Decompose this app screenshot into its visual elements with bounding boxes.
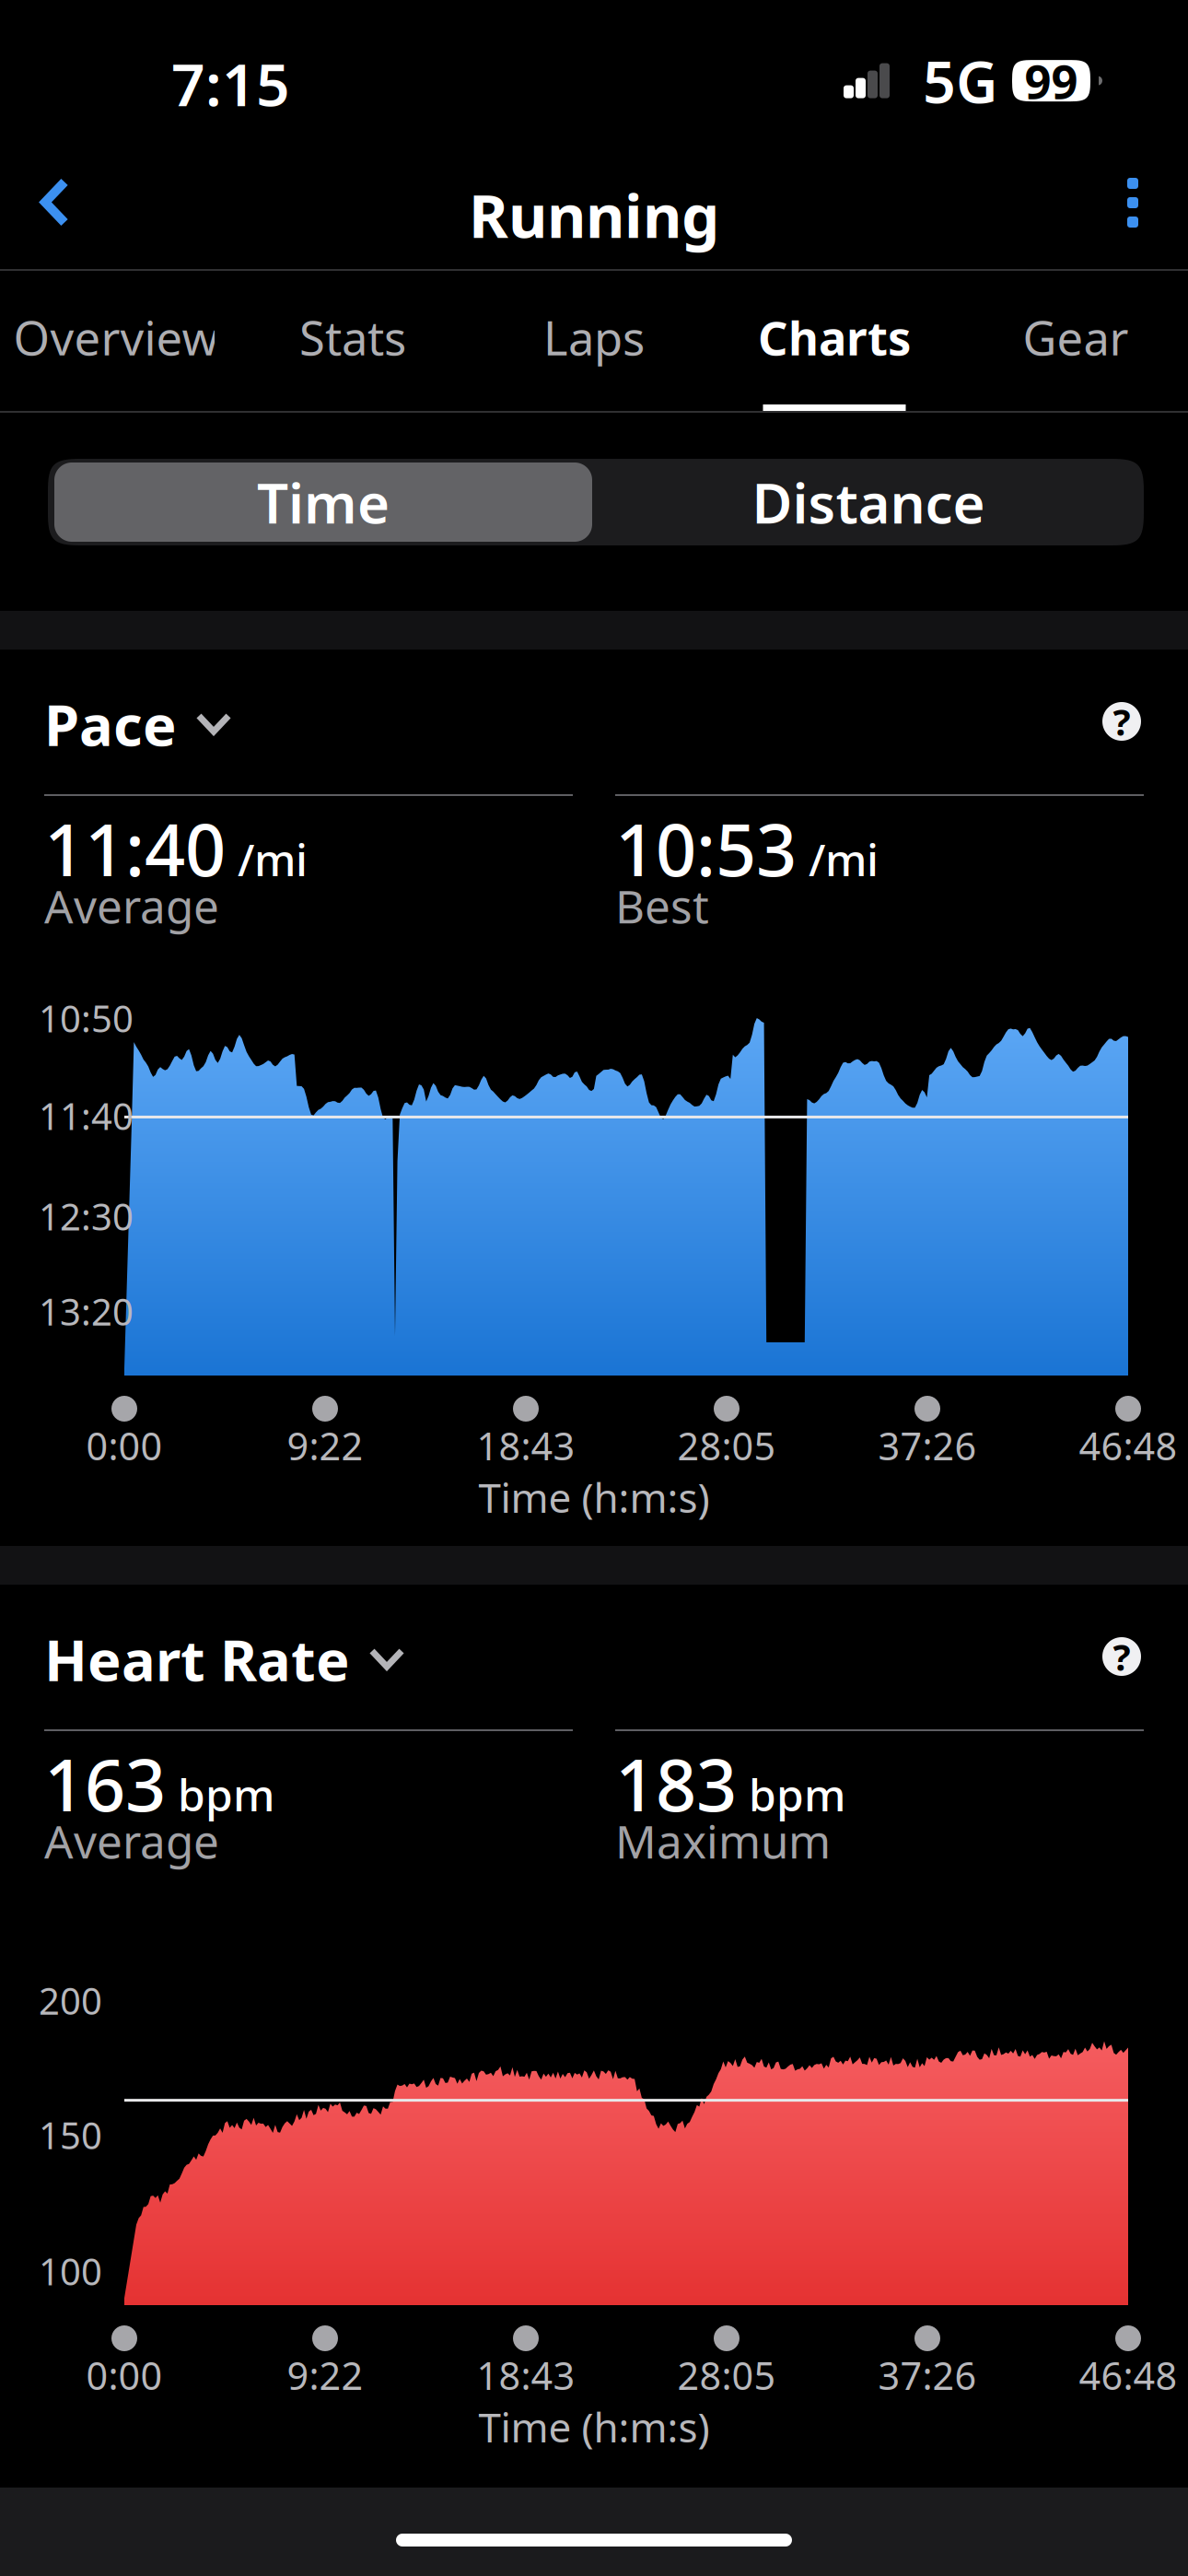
button[interactable]: More options [1077, 136, 1188, 269]
staticText: bpm [178, 1765, 274, 1823]
staticText: 7:15 [171, 44, 290, 123]
staticText: Average [44, 875, 219, 936]
staticText: Pace [44, 687, 177, 762]
staticText: Distance [752, 465, 985, 539]
staticText: 10:53 [615, 801, 797, 896]
staticText: 100 [39, 2247, 102, 2295]
button[interactable]: Laps [456, 271, 732, 411]
staticText: Time [257, 465, 390, 539]
button[interactable]: Stats [215, 271, 491, 411]
staticText: Time (h:m:s) [478, 1470, 710, 1524]
staticText: 11:40 [39, 1091, 134, 1140]
button[interactable]: Back [0, 136, 111, 269]
staticText: 99 [1025, 50, 1078, 112]
staticText: 0:00 [86, 2350, 163, 2400]
staticText: 28:05 [677, 1420, 776, 1471]
staticText: Overview [13, 306, 219, 368]
staticText: Maximum [615, 1811, 831, 1871]
staticText: Gear [1023, 306, 1129, 368]
staticText: Laps [543, 306, 645, 368]
button[interactable]: Gear [938, 271, 1188, 411]
staticText: Time (h:m:s) [478, 2400, 710, 2454]
staticText: 13:20 [39, 1287, 134, 1336]
staticText: Average [44, 1811, 219, 1871]
button[interactable]: Overview [0, 271, 254, 411]
button[interactable]: Charts [696, 271, 973, 411]
staticText: 12:30 [39, 1192, 134, 1241]
staticText: ? [1113, 1632, 1130, 1681]
staticText: 150 [39, 2110, 102, 2159]
button[interactable]: Pace [44, 688, 744, 760]
button[interactable]: Heart Rate [44, 1623, 744, 1695]
staticText: 28:05 [677, 2350, 776, 2400]
staticText: 18:43 [477, 1420, 575, 1471]
staticText: 200 [39, 1976, 102, 2025]
staticText: /mi [809, 830, 879, 888]
staticText: 37:26 [878, 1420, 977, 1471]
staticText: 46:48 [1079, 1420, 1177, 1471]
staticText: 0:00 [86, 1420, 163, 1471]
staticText: Running [469, 175, 719, 255]
button[interactable]: Help [1077, 1612, 1166, 1701]
staticText: 183 [615, 1736, 737, 1831]
staticText: 10:50 [39, 994, 134, 1042]
staticText: /mi [238, 830, 308, 888]
staticText: 163 [44, 1736, 166, 1831]
staticText: Heart Rate [44, 1622, 350, 1697]
staticText: ? [1113, 697, 1130, 746]
staticText: 18:43 [477, 2350, 575, 2400]
button[interactable]: Help [1077, 677, 1166, 766]
staticText: 46:48 [1079, 2350, 1177, 2400]
staticText: 9:22 [287, 2350, 363, 2400]
staticText: Best [615, 875, 709, 936]
staticText: bpm [749, 1765, 845, 1823]
staticText: Stats [299, 306, 406, 368]
staticText: 5G [923, 42, 997, 119]
button[interactable]: Distance [596, 459, 1141, 545]
staticText: 9:22 [287, 1420, 363, 1471]
staticText: Charts [758, 306, 911, 368]
staticText: 11:40 [44, 801, 226, 896]
staticText: 37:26 [878, 2350, 977, 2400]
button[interactable]: Time [51, 459, 596, 545]
